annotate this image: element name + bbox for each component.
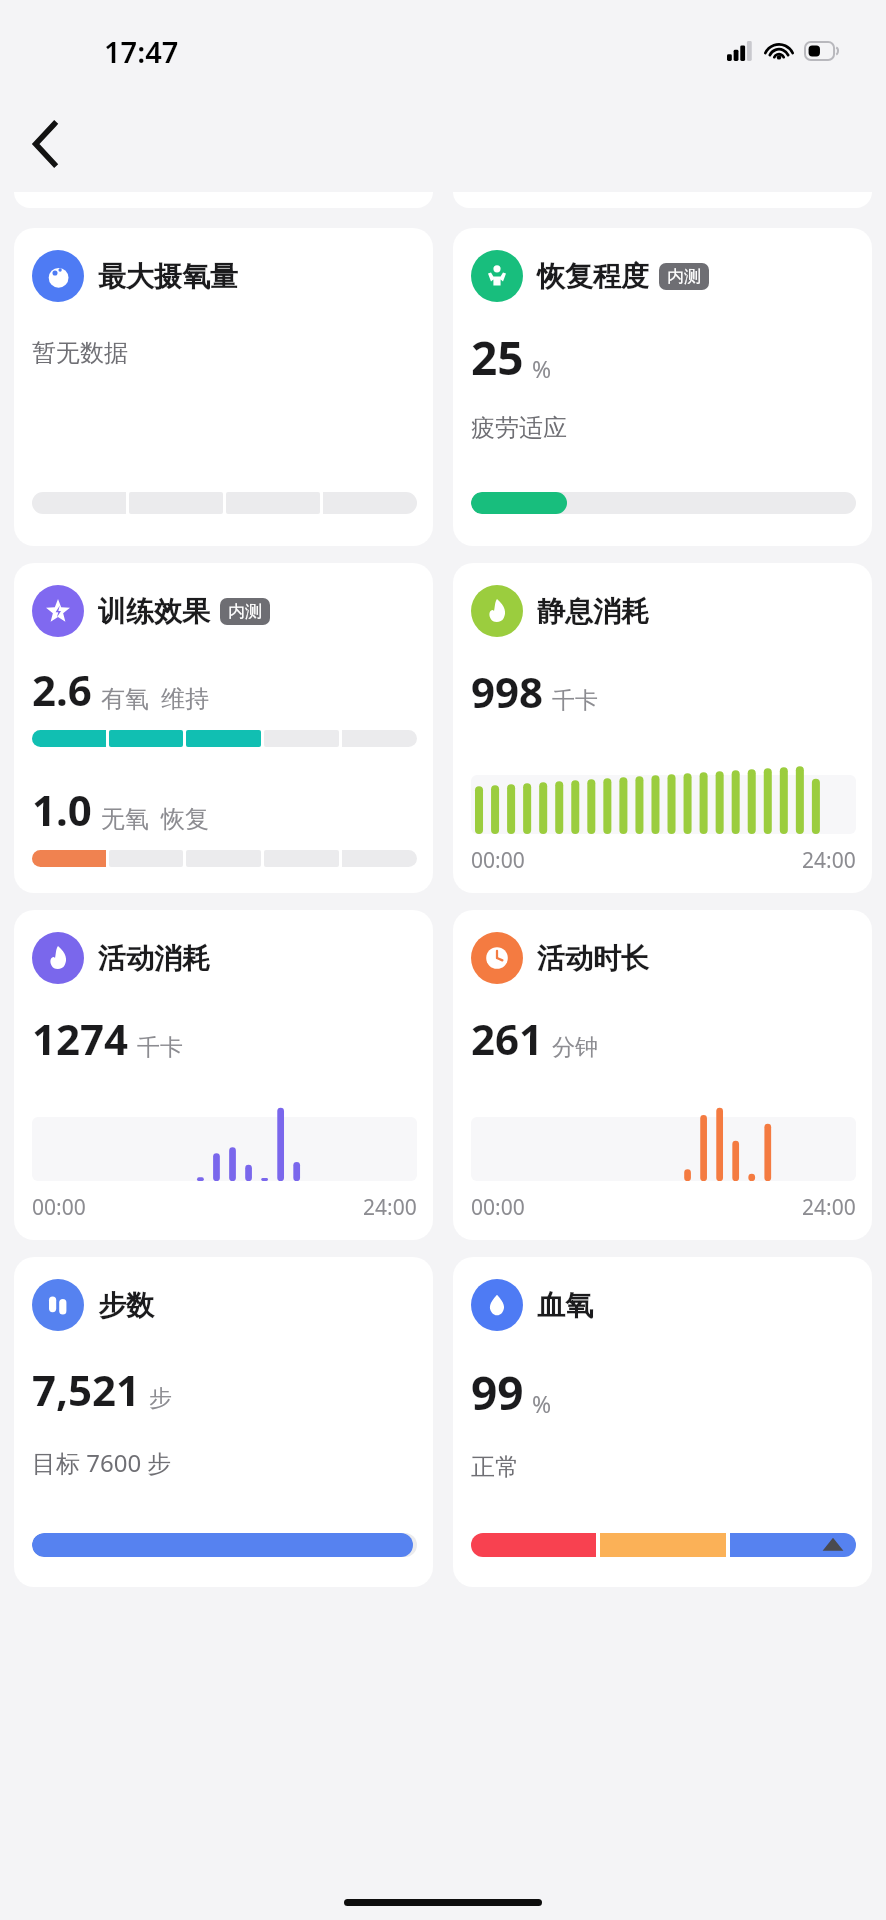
button[interactable]: 训练效果 [14,563,433,893]
staticText: 静息消耗 [537,594,649,629]
button[interactable]: 活动消耗 [14,910,433,1240]
staticText: 暂无数据 [32,338,128,368]
staticText: 2.6 [32,661,92,718]
staticText: 训练效果 [98,594,210,629]
staticText: 无氧 [101,804,149,834]
staticText: 00:00 [471,1193,525,1222]
staticText: 17:47 [104,32,179,71]
staticText: 261 [471,1010,544,1067]
staticText: 维持 [161,684,209,714]
staticText: 步 [149,1384,172,1413]
staticText: 998 [471,663,544,720]
staticText: 血氧 [537,1288,593,1323]
staticText: 内测 [228,601,262,622]
button[interactable]: 步数 [14,1257,433,1587]
staticText: 1274 [32,1010,129,1067]
button[interactable]: 最大摄氧量 [14,228,433,546]
staticText: 25 [471,326,524,389]
staticText: 疲劳适应 [471,413,567,443]
staticText: 千卡 [137,1033,183,1062]
staticText: 24:00 [802,1193,856,1222]
staticText: 恢复程度 [537,259,649,294]
staticText: 分钟 [552,1033,598,1062]
staticText: 00:00 [32,1193,86,1222]
staticText: 99 [471,1361,524,1424]
staticText: 有氧 [101,684,149,714]
staticText: 目标 7600 步 [32,1446,172,1479]
button[interactable]: 静息消耗 [453,563,872,893]
button[interactable]: 恢复程度 [453,228,872,546]
staticText: 24:00 [802,846,856,875]
staticText: % [532,353,552,384]
staticText: 24:00 [363,1193,417,1222]
staticText: 活动时长 [537,941,649,976]
staticText: 步数 [98,1288,154,1323]
staticText: 00:00 [471,846,525,875]
staticText: 内测 [667,266,701,287]
staticText: 7,521 [32,1361,141,1418]
staticText: 1.0 [32,781,92,838]
staticText: 活动消耗 [98,941,210,976]
staticText: 恢复 [161,804,209,834]
staticText: 正常 [471,1452,519,1482]
staticText: 最大摄氧量 [98,259,238,294]
staticText: 千卡 [552,686,598,715]
button[interactable]: 活动时长 [453,910,872,1240]
staticText: % [532,1388,552,1419]
button[interactable]: 血氧 [453,1257,872,1587]
button[interactable]: Back [16,114,76,174]
